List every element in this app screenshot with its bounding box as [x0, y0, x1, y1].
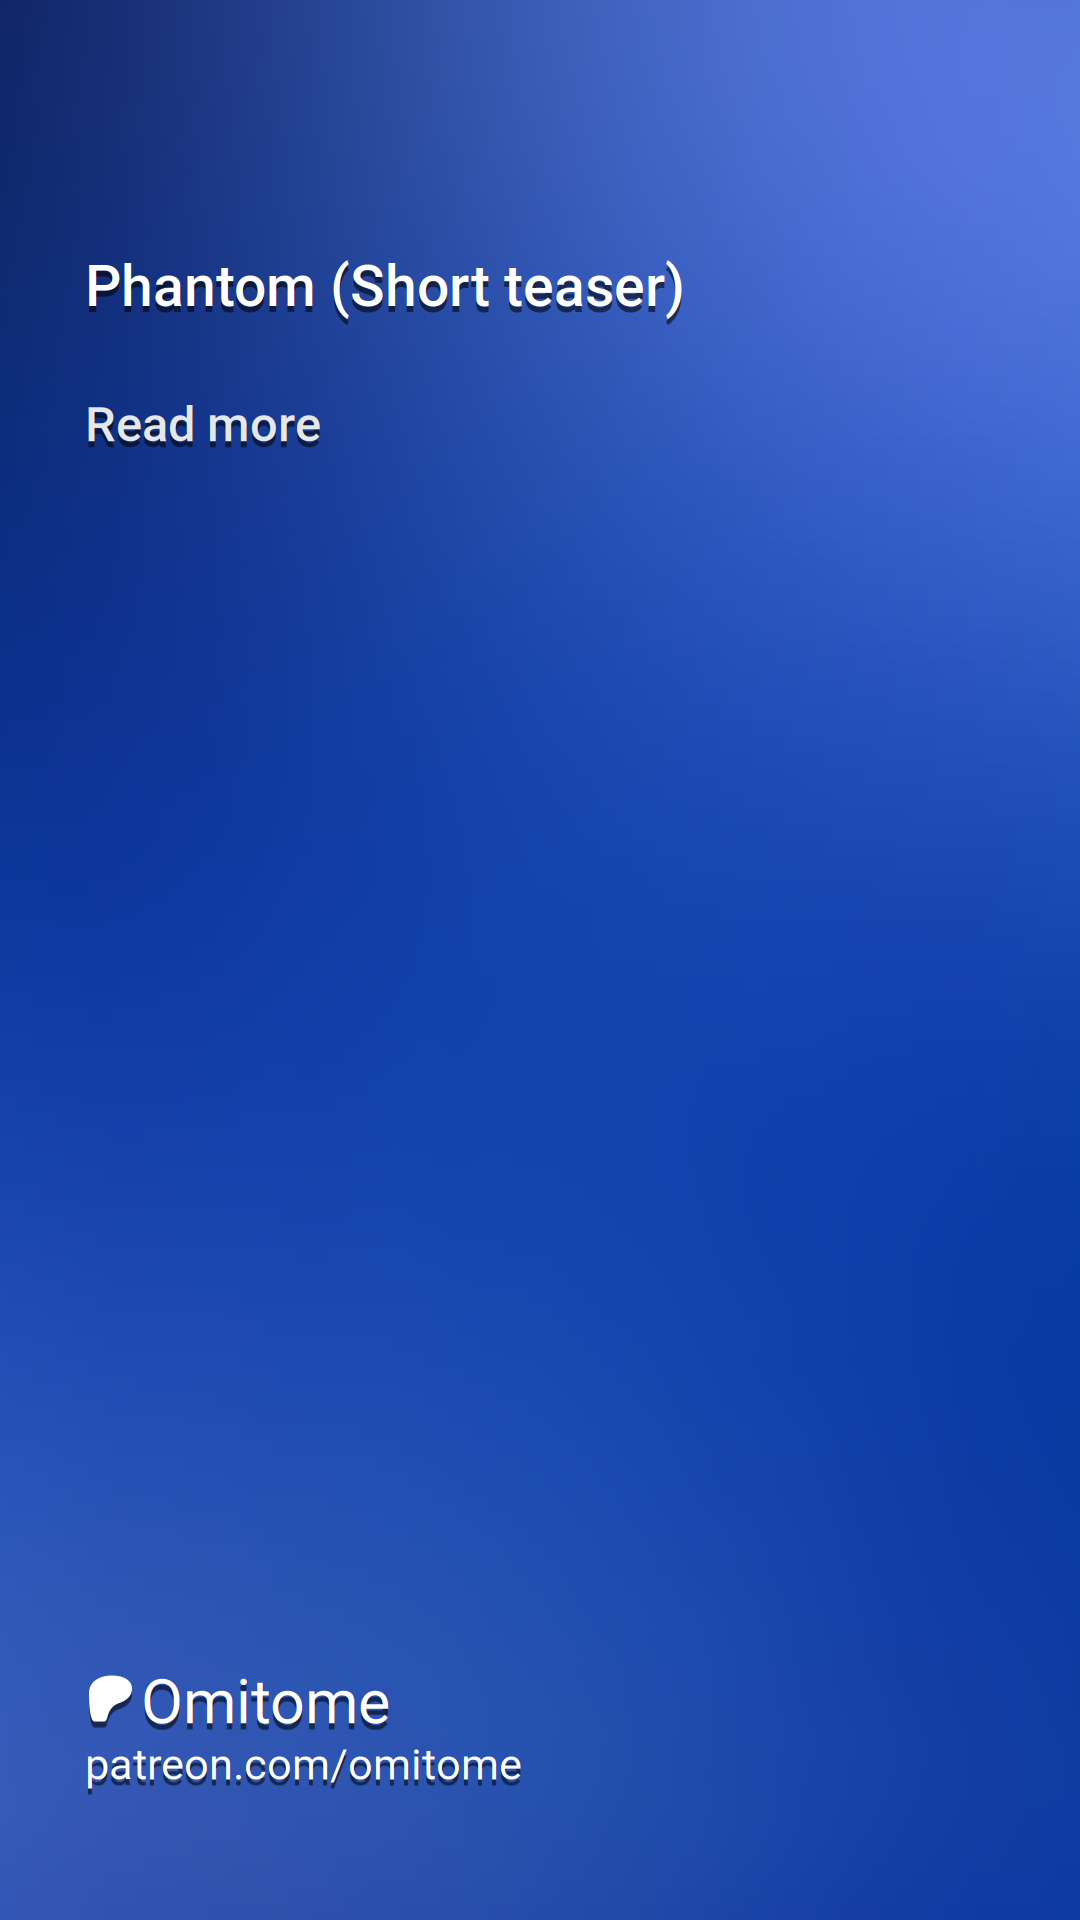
- staticText: Omitome: [141, 1667, 390, 1738]
- staticText: Read more: [85, 396, 321, 453]
- button[interactable]: Read more: [85, 396, 321, 453]
- button[interactable]: patreon.com/omitome: [85, 1739, 522, 1790]
- button[interactable]: Omitome: [85, 1667, 390, 1738]
- staticText: patreon.com/omitome: [85, 1739, 522, 1790]
- staticText: Phantom (Short teaser): [85, 253, 685, 320]
- button[interactable]: Phantom (Short teaser): [85, 253, 685, 320]
